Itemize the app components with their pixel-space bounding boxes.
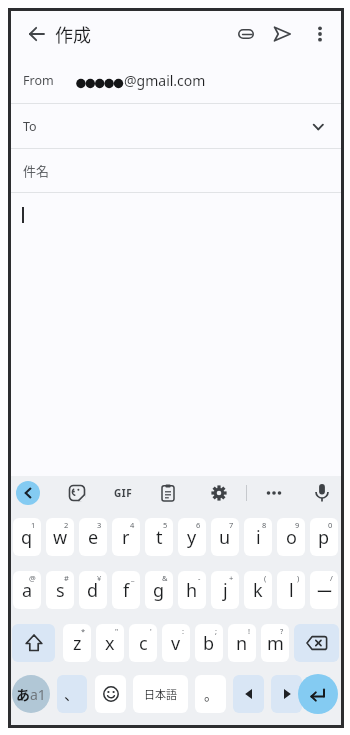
staticText: 3 [97, 520, 102, 530]
staticText: @gmail.com [124, 71, 206, 90]
staticText: / [330, 573, 333, 583]
button[interactable]: m [261, 624, 289, 662]
button[interactable]: k [244, 571, 272, 609]
staticText: ; [215, 626, 218, 636]
button[interactable]: 。 [195, 675, 226, 713]
staticText: _ [131, 573, 135, 583]
staticText: n [236, 631, 248, 656]
staticText: あ [16, 684, 30, 704]
staticText: 4 [130, 520, 135, 530]
button[interactable]: u [211, 518, 239, 556]
staticText: e [88, 525, 99, 550]
button[interactable]: 日本語 [133, 675, 188, 713]
staticText: ! [248, 626, 251, 636]
staticText: h [186, 578, 198, 603]
button[interactable]: s [46, 571, 74, 609]
staticText: ? [280, 626, 284, 636]
button[interactable] [16, 481, 40, 505]
button[interactable]: e [79, 518, 107, 556]
button[interactable]: GIF [105, 478, 141, 508]
button[interactable] [302, 16, 338, 52]
staticText: v [171, 631, 181, 656]
staticText: @ [29, 573, 36, 583]
button[interactable]: x [96, 624, 124, 662]
button[interactable] [95, 675, 126, 713]
button[interactable]: r [112, 518, 140, 556]
button[interactable] [264, 16, 300, 52]
staticText: GIF [114, 486, 133, 500]
button[interactable] [204, 478, 234, 508]
button[interactable]: a [13, 571, 41, 609]
button[interactable]: v [162, 624, 190, 662]
button[interactable]: h [178, 571, 206, 609]
button[interactable]: w [46, 518, 74, 556]
staticText: 7 [229, 520, 234, 530]
button[interactable]: j [211, 571, 239, 609]
button[interactable]: f [112, 571, 140, 609]
staticText: ¥ [97, 573, 102, 583]
staticText: k [253, 578, 263, 603]
staticText: " [115, 626, 119, 636]
staticText: 0 [328, 520, 333, 530]
button[interactable]: あ [12, 675, 50, 713]
staticText: c [139, 631, 148, 656]
staticText: m [267, 631, 284, 656]
staticText: y [187, 525, 197, 550]
staticText: g [153, 578, 165, 603]
staticText: 日本語 [144, 686, 177, 702]
staticText: 6 [196, 520, 201, 530]
staticText: 5 [163, 520, 168, 530]
staticText: From [23, 72, 54, 89]
staticText: 。 [204, 684, 218, 704]
button[interactable] [233, 675, 264, 713]
button[interactable] [228, 16, 264, 52]
button[interactable]: o [277, 518, 305, 556]
staticText: ー [316, 578, 333, 603]
button[interactable]: From [11, 57, 341, 103]
button[interactable]: l [277, 571, 305, 609]
button[interactable]: z [63, 624, 91, 662]
button[interactable]: 件名 [11, 149, 341, 192]
staticText: a [22, 578, 33, 603]
staticText: ( [264, 573, 267, 583]
button[interactable] [294, 624, 339, 662]
button[interactable]: 、 [57, 675, 87, 713]
staticText: 、 [64, 683, 80, 705]
staticText: r [122, 525, 130, 550]
button[interactable] [153, 478, 183, 508]
staticText: 2 [64, 520, 69, 530]
button[interactable]: p [310, 518, 338, 556]
staticText: - [198, 573, 201, 583]
staticText: 9 [295, 520, 300, 530]
button[interactable]: ー [310, 571, 338, 609]
staticText: ) [297, 573, 300, 583]
button[interactable] [19, 16, 55, 52]
button[interactable] [307, 478, 337, 508]
staticText: & [162, 573, 168, 583]
button[interactable]: To [11, 104, 341, 148]
staticText: q [21, 525, 33, 550]
button[interactable]: g [145, 571, 173, 609]
staticText: + [229, 573, 234, 583]
button[interactable] [271, 675, 302, 713]
button[interactable] [298, 674, 338, 714]
staticText: u [219, 525, 231, 550]
staticText: 8 [262, 520, 267, 530]
button[interactable]: i [244, 518, 272, 556]
button[interactable]: n [228, 624, 256, 662]
staticText: p [318, 525, 330, 550]
button[interactable] [62, 478, 92, 508]
button[interactable]: q [13, 518, 41, 556]
button[interactable]: t [145, 518, 173, 556]
button[interactable] [259, 478, 289, 508]
button[interactable]: d [79, 571, 107, 609]
staticText: j [223, 578, 228, 603]
staticText: l [289, 578, 294, 603]
button[interactable] [12, 624, 55, 662]
button[interactable]: b [195, 624, 223, 662]
staticText: z [73, 631, 82, 656]
button[interactable]: c [129, 624, 157, 662]
staticText: : [182, 626, 185, 636]
staticText: i [256, 525, 261, 550]
button[interactable]: y [178, 518, 206, 556]
